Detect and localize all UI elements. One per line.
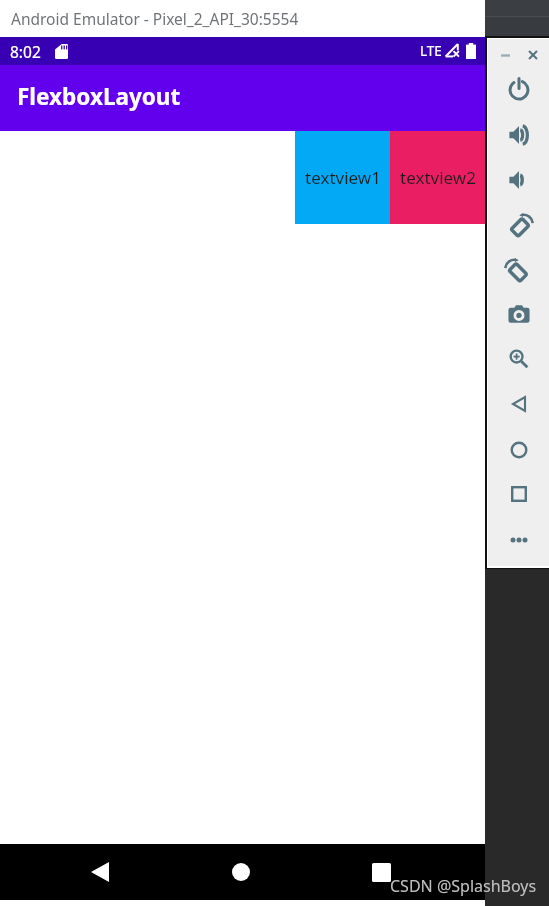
button[interactable]: textview1 xyxy=(295,131,390,224)
button[interactable]: textview2 xyxy=(390,131,485,224)
button[interactable]: Back xyxy=(501,386,537,422)
button[interactable]: Volume down xyxy=(501,162,537,198)
button[interactable]: Overview xyxy=(501,476,537,512)
staticText: CSDN @SplashBoys xyxy=(390,875,537,897)
button[interactable]: Back xyxy=(84,856,116,888)
staticText: LTE xyxy=(420,42,442,60)
button[interactable]: More xyxy=(501,522,537,558)
button[interactable]: Rotate right xyxy=(501,252,537,288)
button[interactable]: Recents xyxy=(365,856,397,888)
staticText: FlexboxLayout xyxy=(17,81,181,112)
button[interactable]: Home xyxy=(501,432,537,468)
button[interactable]: Zoom xyxy=(501,341,537,377)
staticText: textview2 xyxy=(400,166,476,189)
staticText: 8:02 xyxy=(10,41,41,62)
button[interactable]: Close xyxy=(519,41,547,69)
button[interactable]: Minimize xyxy=(491,41,519,69)
staticText: textview1 xyxy=(305,166,381,189)
staticText: Android Emulator - Pixel_2_API_30:5554 xyxy=(11,8,299,29)
button[interactable]: Take screenshot xyxy=(501,296,537,332)
button[interactable]: Home xyxy=(225,856,257,888)
button[interactable]: Volume up xyxy=(501,117,537,153)
button[interactable]: Rotate left xyxy=(501,207,537,243)
button[interactable]: Power xyxy=(501,71,537,107)
